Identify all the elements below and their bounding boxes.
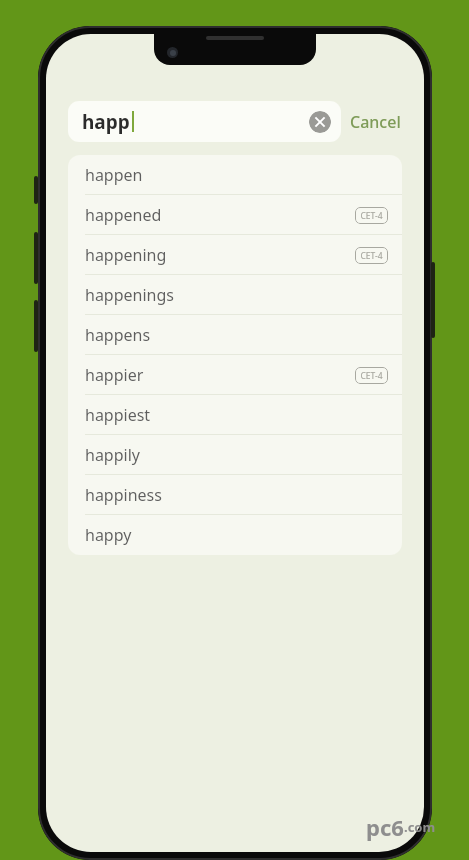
staticText: happy <box>85 524 132 546</box>
staticText: happier <box>85 364 144 386</box>
other: Power <box>431 262 435 338</box>
staticText: happenings <box>85 284 174 306</box>
staticText: .com <box>404 818 436 836</box>
button[interactable]: happier <box>68 355 402 395</box>
button[interactable]: happening <box>68 235 402 275</box>
staticText: CET-4 <box>360 250 383 262</box>
button[interactable]: Cancel <box>341 103 410 141</box>
staticText: pc6 <box>366 812 404 842</box>
button[interactable]: happ <box>68 101 341 142</box>
other: Volume up <box>34 232 38 284</box>
other: Mute switch <box>34 176 38 204</box>
staticText: happens <box>85 324 151 346</box>
other: Volume down <box>34 300 38 352</box>
staticText: happened <box>85 204 162 226</box>
staticText: CET-4 <box>360 210 383 222</box>
button[interactable]: happy <box>68 515 402 555</box>
staticText: happen <box>85 164 143 186</box>
staticText: CET-4 <box>360 370 383 382</box>
button[interactable]: happened <box>68 195 402 235</box>
button[interactable]: happens <box>68 315 402 355</box>
button[interactable]: happiness <box>68 475 402 515</box>
staticText: happiness <box>85 484 162 506</box>
button[interactable]: Clear text <box>309 111 331 133</box>
button[interactable]: happiest <box>68 395 402 435</box>
staticText: happiest <box>85 404 151 426</box>
staticText: Cancel <box>350 111 401 133</box>
button[interactable]: happenings <box>68 275 402 315</box>
button[interactable]: happily <box>68 435 402 475</box>
staticText: happ <box>82 109 130 135</box>
staticText: happily <box>85 444 140 466</box>
staticText: happening <box>85 244 167 266</box>
button[interactable]: happen <box>68 155 402 195</box>
